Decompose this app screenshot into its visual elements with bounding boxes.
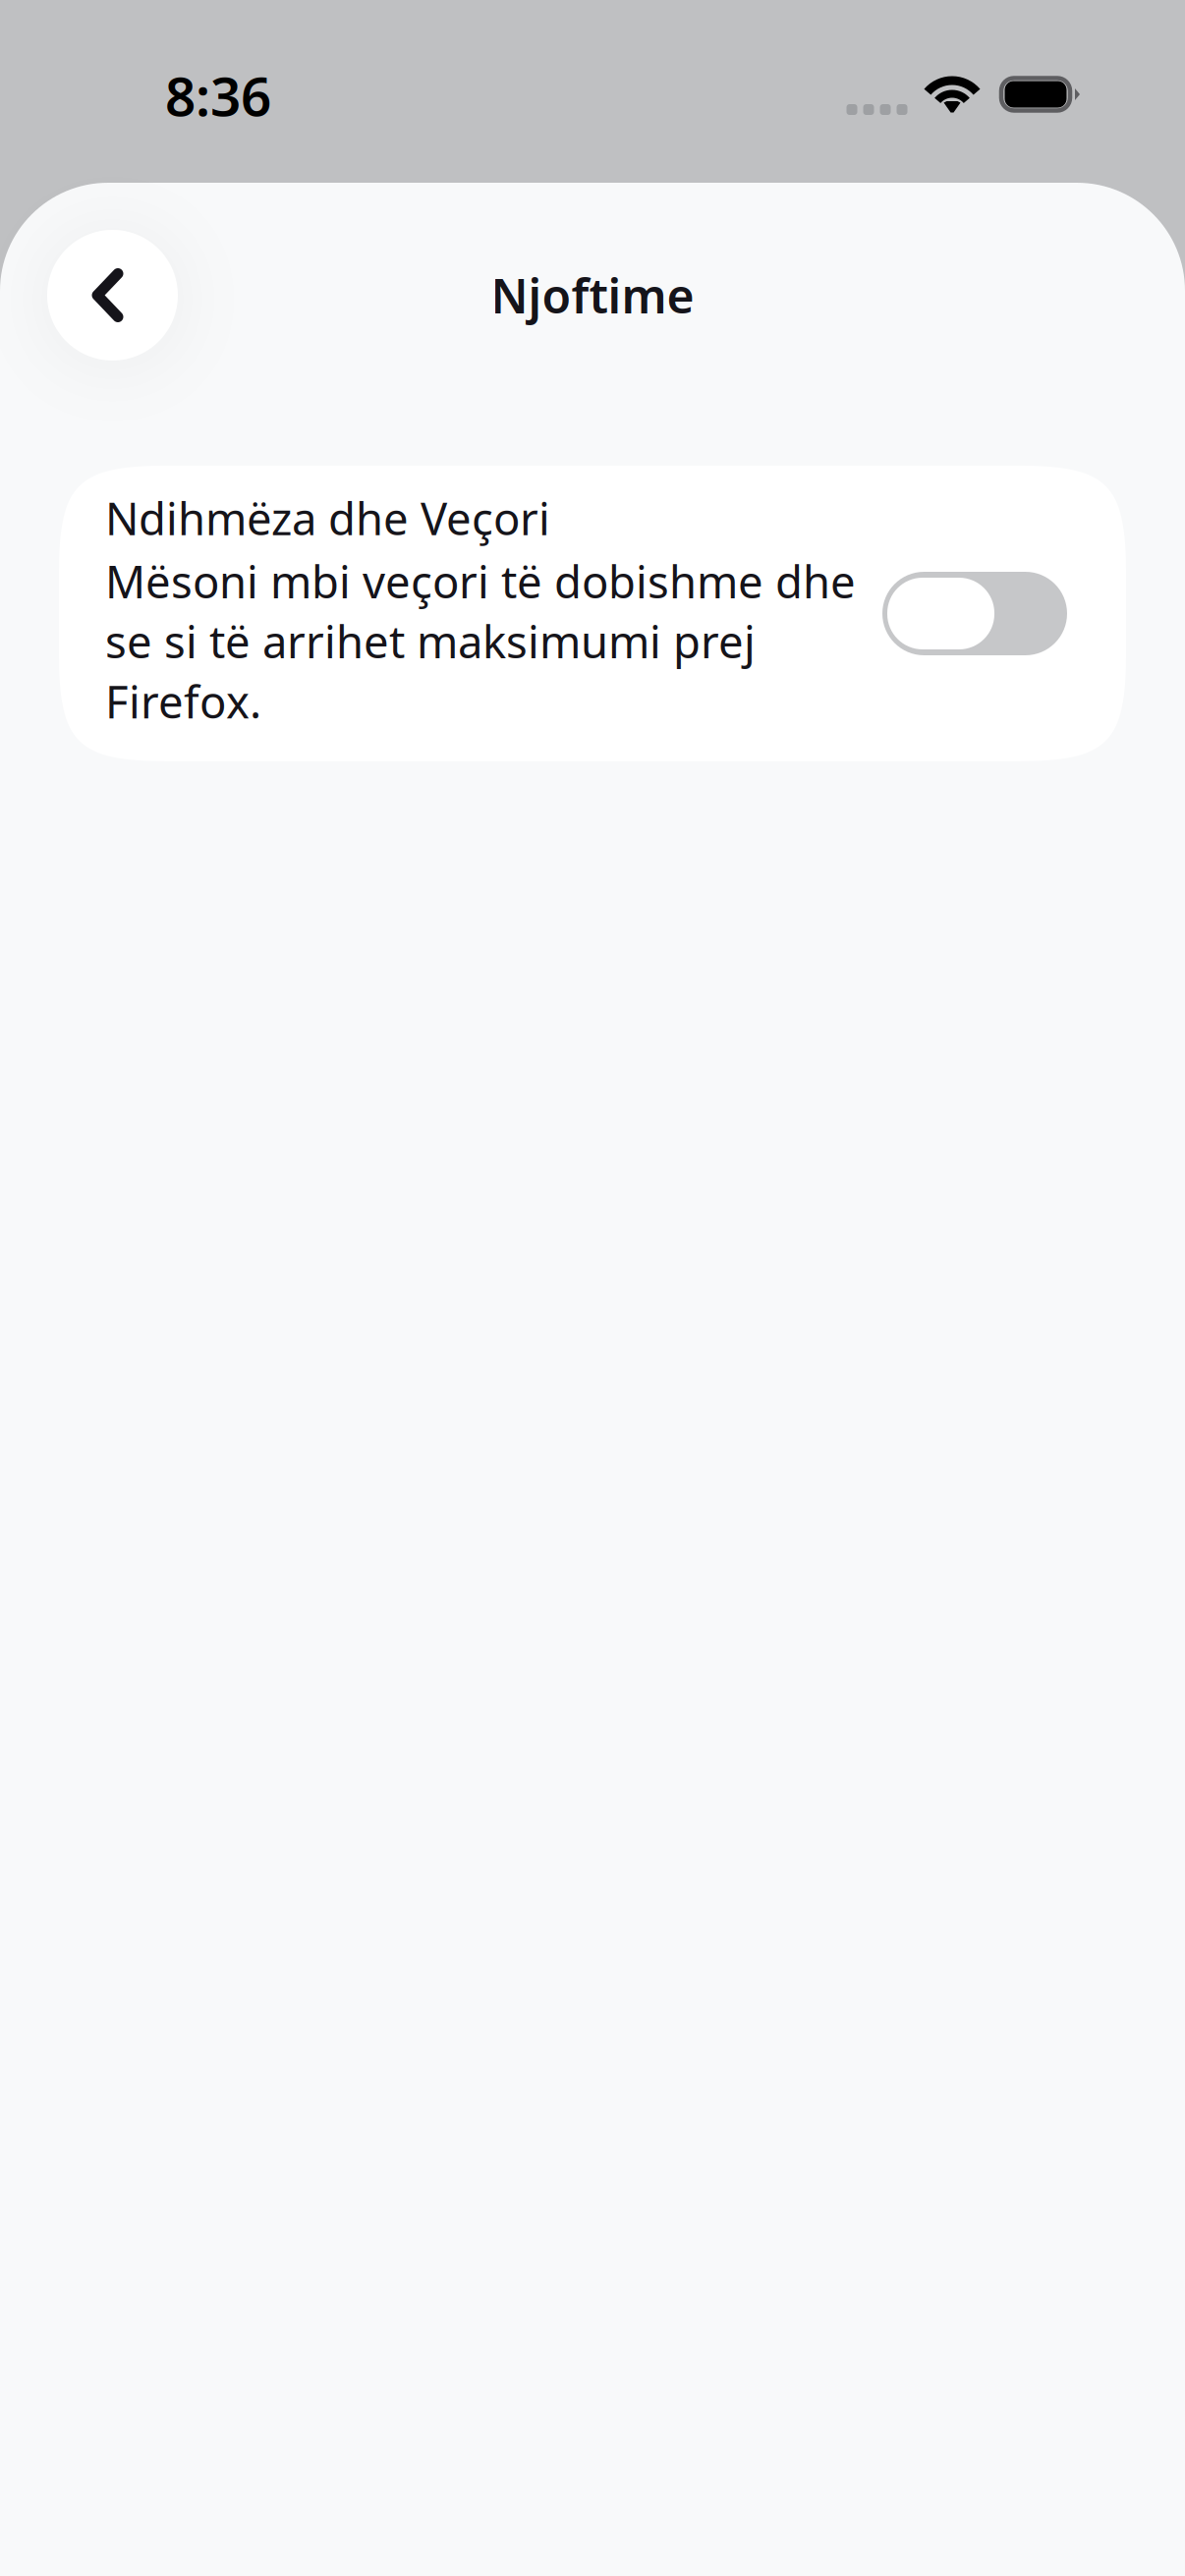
staticText: Mësoni mbi veçori të dobishme dhe se si … — [105, 551, 856, 731]
button[interactable]: Ndihmëza dhe Veçori — [59, 466, 1126, 761]
staticText: 8:36 — [165, 60, 271, 131]
button[interactable]: Back — [47, 230, 178, 361]
staticText: Ndihmëza dhe Veçori — [105, 488, 550, 547]
staticText: Njoftime — [491, 264, 694, 326]
